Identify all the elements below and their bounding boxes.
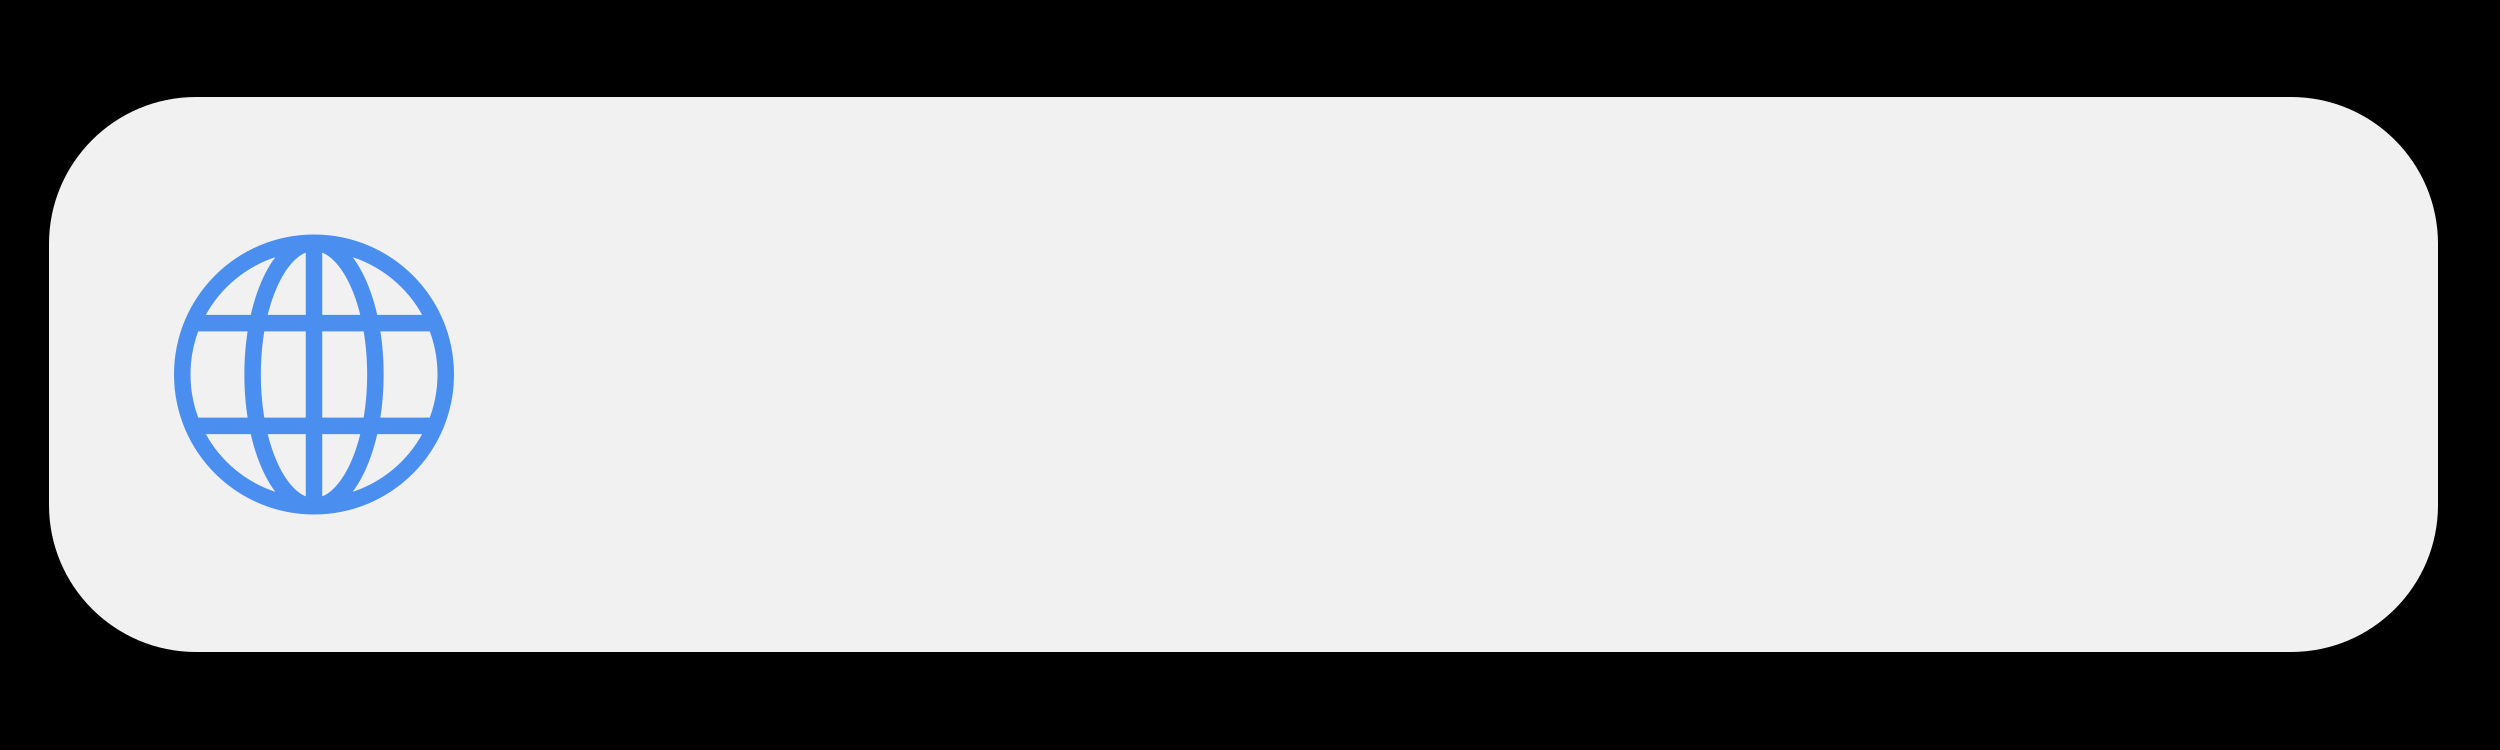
button[interactable]: Language xyxy=(49,97,2438,652)
